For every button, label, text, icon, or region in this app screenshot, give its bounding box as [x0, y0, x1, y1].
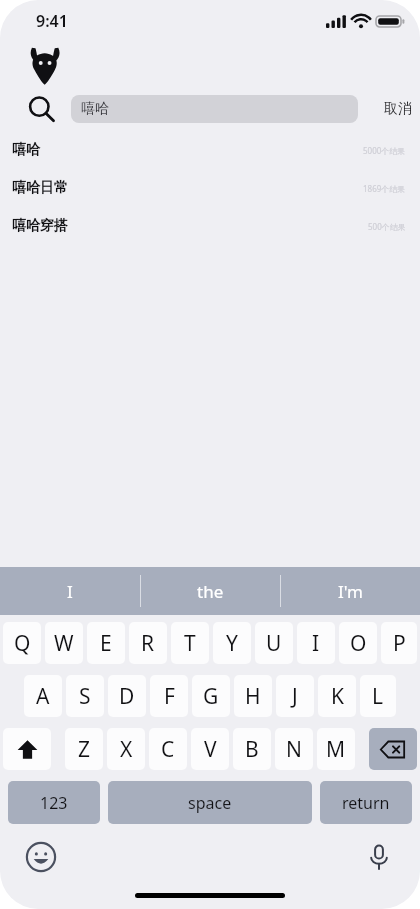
button[interactable]: E — [87, 622, 125, 664]
staticText: D — [119, 682, 135, 711]
button[interactable]: 嘻哈日常 — [0, 169, 420, 207]
staticText: W — [54, 629, 74, 658]
staticText: 嘻哈 — [81, 100, 109, 118]
button[interactable]: U — [255, 622, 293, 664]
staticText: C — [161, 735, 175, 764]
button[interactable]: L — [360, 675, 396, 717]
staticText: N — [286, 735, 302, 764]
staticText: F — [164, 682, 175, 711]
staticText: T — [184, 629, 196, 658]
button[interactable]: Dictation — [362, 840, 396, 874]
button[interactable]: N — [275, 728, 313, 770]
button[interactable]: the — [141, 567, 280, 615]
button[interactable]: S — [66, 675, 104, 717]
button[interactable]: Z — [65, 728, 103, 770]
button[interactable]: App logo — [24, 44, 68, 86]
staticText: Y — [226, 629, 238, 658]
staticText: 9:41 — [36, 10, 68, 32]
button[interactable]: K — [318, 675, 356, 717]
staticText: 取消 — [384, 100, 412, 118]
button[interactable]: J — [276, 675, 314, 717]
staticText: Q — [14, 629, 31, 658]
staticText: J — [292, 682, 298, 711]
button[interactable]: B — [233, 728, 271, 770]
button[interactable]: Q — [3, 622, 41, 664]
staticText: the — [197, 580, 224, 603]
button[interactable]: return — [320, 781, 412, 824]
button[interactable]: space — [108, 781, 312, 824]
staticText: G — [203, 682, 219, 711]
button[interactable]: O — [339, 622, 377, 664]
button[interactable]: W — [45, 622, 83, 664]
staticText: O — [350, 629, 367, 658]
button[interactable]: Y — [213, 622, 251, 664]
button[interactable]: T — [171, 622, 209, 664]
button[interactable]: Shift — [3, 728, 51, 770]
staticText: U — [266, 629, 282, 658]
button[interactable]: F — [150, 675, 188, 717]
staticText: H — [245, 682, 261, 711]
staticText: L — [372, 682, 384, 711]
button[interactable]: D — [108, 675, 146, 717]
staticText: 嘻哈 — [12, 141, 40, 159]
staticText: I — [67, 580, 73, 603]
staticText: M — [326, 735, 346, 764]
staticText: 500个结果 — [368, 221, 406, 232]
staticText: 123 — [40, 792, 68, 814]
button[interactable]: Emoji — [24, 840, 58, 874]
staticText: E — [100, 629, 112, 658]
button[interactable]: M — [317, 728, 355, 770]
staticText: space — [188, 792, 232, 814]
button[interactable]: X — [107, 728, 145, 770]
staticText: I'm — [338, 580, 363, 603]
staticText: K — [331, 682, 344, 711]
button[interactable]: 取消 — [384, 100, 412, 118]
button[interactable]: 嘻哈穿搭 — [0, 207, 420, 245]
staticText: S — [79, 682, 91, 711]
staticText: V — [204, 735, 217, 764]
staticText: I — [312, 629, 320, 658]
button[interactable]: P — [381, 622, 417, 664]
staticText: 嘻哈穿搭 — [12, 217, 68, 235]
staticText: Z — [78, 735, 91, 764]
staticText: P — [393, 629, 406, 658]
staticText: return — [342, 792, 390, 814]
button[interactable]: 嘻哈 — [0, 131, 420, 169]
staticText: B — [245, 735, 259, 764]
staticText: A — [36, 682, 50, 711]
button[interactable]: C — [149, 728, 187, 770]
staticText: R — [141, 629, 155, 658]
button[interactable]: A — [24, 675, 62, 717]
button[interactable]: Backspace — [369, 728, 417, 770]
staticText: 嘻哈日常 — [12, 179, 68, 197]
button[interactable]: I'm — [281, 567, 420, 615]
button[interactable]: Search — [24, 92, 58, 126]
button[interactable]: R — [129, 622, 167, 664]
button[interactable]: 123 — [8, 781, 100, 824]
button[interactable]: V — [191, 728, 229, 770]
button[interactable]: H — [234, 675, 272, 717]
staticText: X — [120, 735, 133, 764]
staticText: 5000个结果 — [363, 145, 406, 156]
button[interactable]: G — [192, 675, 230, 717]
staticText: 1869个结果 — [363, 183, 406, 194]
button[interactable]: I — [297, 622, 335, 664]
button[interactable]: I — [0, 567, 140, 615]
button[interactable]: 嘻哈 — [71, 95, 358, 123]
